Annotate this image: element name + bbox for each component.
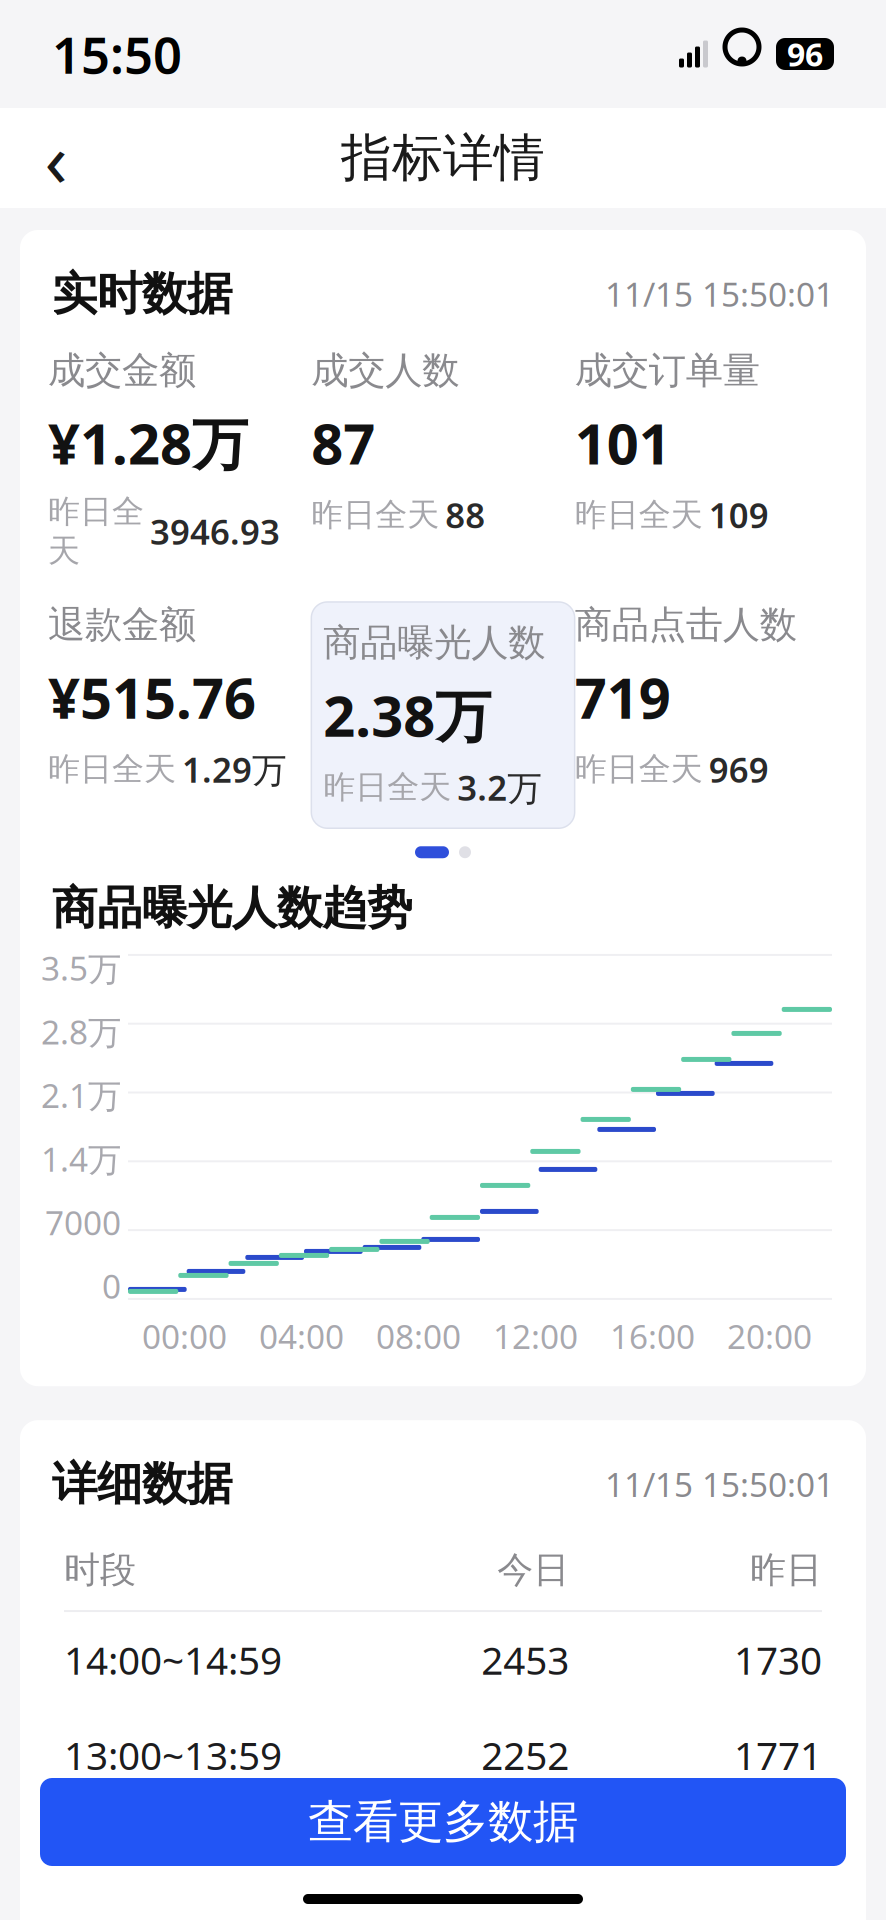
staticText: 昨日全天 <box>323 768 451 807</box>
staticText: 详细数据 <box>52 1456 232 1512</box>
staticText: 20:00 <box>727 1314 812 1358</box>
staticText: 昨日全天 <box>48 492 144 570</box>
staticText: 2252 <box>481 1729 569 1781</box>
staticText: 11/15 15:50:01 <box>605 272 834 316</box>
staticText: 查看更多数据 <box>308 1794 578 1850</box>
staticText: 实时数据 <box>52 266 232 322</box>
staticText: 12:00~12:59 <box>64 1825 282 1876</box>
staticText: ¥1.28万 <box>48 405 248 480</box>
staticText: 商品点击人数 <box>575 602 797 648</box>
staticText: 16:00 <box>610 1314 695 1358</box>
staticText: 101 <box>575 405 671 480</box>
staticText: 商品曝光人数趋势 <box>52 880 412 936</box>
staticText: 指标详情 <box>341 127 545 189</box>
staticText: 12:00 <box>493 1314 578 1358</box>
staticText: 969 <box>709 746 769 792</box>
staticText: 昨日全天 <box>575 495 703 535</box>
staticText: 13:00~13:59 <box>64 1729 282 1781</box>
staticText: 11/15 15:50:01 <box>605 1462 834 1506</box>
staticText: 退款金额 <box>48 602 196 648</box>
staticText: 昨日全天 <box>48 750 176 789</box>
staticText: 1730 <box>734 1634 822 1685</box>
staticText: 7000 <box>45 1200 121 1244</box>
staticText: 88 <box>445 492 485 538</box>
staticText: 1.4万 <box>41 1137 121 1181</box>
staticText: 时段 <box>64 1548 136 1592</box>
staticText: 2453 <box>481 1634 569 1685</box>
button[interactable]: 商品曝光人数 <box>311 602 575 828</box>
staticText: 1734 <box>734 1825 822 1876</box>
staticText: 3946.93 <box>150 508 280 554</box>
staticText: 109 <box>709 492 769 538</box>
staticText: 成交订单量 <box>575 348 760 394</box>
staticText: ¥515.76 <box>48 660 256 734</box>
staticText: 昨日全天 <box>311 495 439 535</box>
staticText: 96 <box>787 33 823 75</box>
staticText: 昨日 <box>750 1548 822 1592</box>
staticText: 2.38万 <box>323 678 491 752</box>
staticText: 3.2万 <box>457 764 542 810</box>
staticText: 08:00 <box>376 1314 461 1358</box>
staticText: 成交金额 <box>48 348 196 394</box>
staticText: 87 <box>311 405 375 480</box>
staticText: 商品曝光人数 <box>323 620 545 666</box>
staticText: 昨日全天 <box>575 750 703 789</box>
staticText: ‹ <box>44 108 67 208</box>
staticText: 14:00~14:59 <box>64 1634 282 1685</box>
button[interactable]: 查看更多数据 <box>40 1778 846 1866</box>
staticText: 3.5万 <box>41 946 121 990</box>
staticText: 2456 <box>481 1825 569 1876</box>
staticText: 04:00 <box>259 1314 344 1358</box>
staticText: 00:00 <box>142 1314 227 1358</box>
staticText: 719 <box>575 660 671 734</box>
staticText: 今日 <box>497 1548 569 1592</box>
staticText: 1771 <box>734 1729 822 1781</box>
button[interactable]: Back <box>26 128 86 188</box>
staticText: 2.1万 <box>41 1073 121 1117</box>
staticText: 成交人数 <box>311 348 459 394</box>
staticText: 15:50 <box>52 20 182 88</box>
staticText: 2.8万 <box>41 1009 121 1054</box>
staticText: 1.29万 <box>182 746 287 792</box>
staticText: 0 <box>102 1264 121 1308</box>
